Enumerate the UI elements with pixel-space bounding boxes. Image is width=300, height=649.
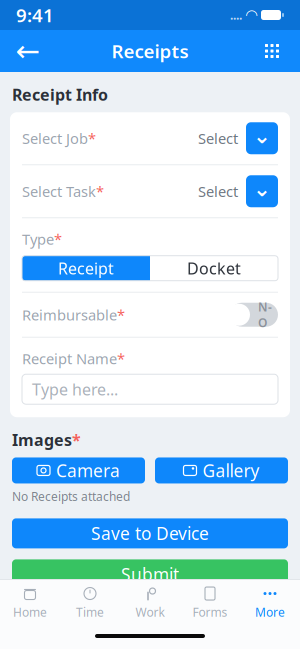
staticText: Reimbursable <box>22 305 117 324</box>
staticText: ⌄ <box>253 124 271 148</box>
button[interactable]: Type here... <box>22 374 278 404</box>
staticText: Save to Device <box>91 522 209 545</box>
button[interactable]: Time <box>60 587 120 619</box>
staticText: ← <box>15 34 40 68</box>
staticText: * <box>117 349 125 368</box>
staticText: Docket <box>187 258 241 279</box>
staticText: Select Job <box>22 128 88 148</box>
staticText: Camera <box>56 459 120 482</box>
staticText: Gallery <box>202 459 259 482</box>
staticText: * <box>117 305 125 324</box>
button[interactable]: Gallery <box>155 457 288 483</box>
staticText: No Receipts attached <box>12 488 130 504</box>
button[interactable]: Docket <box>150 256 278 281</box>
staticText: Home <box>13 604 47 620</box>
staticText: Images <box>12 429 72 450</box>
staticText: Select <box>198 128 238 148</box>
staticText: * <box>54 229 62 249</box>
staticText: * <box>88 128 96 148</box>
staticText: Submit <box>121 563 179 586</box>
staticText: Select Task <box>22 181 96 201</box>
staticText: Receipts <box>111 39 188 63</box>
staticText: .... <box>230 7 242 23</box>
staticText: ⌄ <box>253 177 271 201</box>
button[interactable]: More <box>240 587 300 619</box>
staticText: Work <box>135 604 164 620</box>
button[interactable]: Reimbursable <box>10 293 290 337</box>
staticText: Forms <box>192 604 227 620</box>
staticText: Receipt Info <box>12 84 108 105</box>
button[interactable]: Work <box>120 587 180 619</box>
staticText: Receipt <box>58 258 114 279</box>
staticText: Time <box>76 604 104 620</box>
button[interactable]: Save to Device <box>12 518 288 548</box>
button[interactable]: Camera <box>12 457 145 483</box>
button[interactable]: Receipt <box>22 256 150 281</box>
staticText: 9:41 <box>16 3 54 27</box>
staticText: * <box>72 429 81 450</box>
button[interactable]: Select Job <box>10 112 290 164</box>
button[interactable]: Forms <box>180 587 240 619</box>
staticText: * <box>96 181 104 201</box>
button[interactable]: Menu <box>250 29 294 73</box>
staticText: Select <box>198 181 238 201</box>
staticText: ◠ <box>246 7 257 23</box>
staticText: More <box>255 604 285 620</box>
button[interactable]: Submit <box>12 559 288 589</box>
button[interactable]: Back <box>6 29 50 73</box>
staticText: Receipt Name <box>22 349 117 368</box>
staticText: NO <box>258 299 272 331</box>
button[interactable]: Home <box>0 587 60 619</box>
staticText: Type <box>22 229 54 249</box>
button[interactable]: Select Task <box>10 165 290 217</box>
staticText: Type here... <box>32 379 118 400</box>
